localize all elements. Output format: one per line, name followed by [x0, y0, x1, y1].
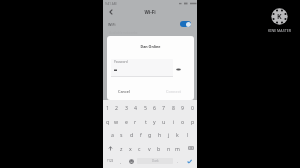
- button[interactable]: 8: [169, 100, 178, 114]
- button[interactable]: Backspace: [186, 141, 195, 155]
- button[interactable]: x: [126, 141, 135, 155]
- button[interactable]: z: [117, 141, 126, 155]
- button[interactable]: 0: [188, 100, 197, 114]
- button[interactable]: Show password: [175, 66, 182, 73]
- staticText: WiFi: [108, 22, 116, 27]
- staticText: z: [120, 145, 123, 152]
- staticText: Dan Online: [107, 44, 194, 49]
- staticText: v: [148, 145, 151, 152]
- staticText: 9: [181, 104, 184, 111]
- staticText: e: [125, 118, 128, 125]
- staticText: a: [111, 131, 114, 138]
- button[interactable]: Shift: [105, 141, 115, 155]
- staticText: Password: [114, 60, 128, 64]
- button[interactable]: 2: [112, 100, 121, 114]
- button[interactable]: j: [164, 127, 173, 141]
- staticText: ?123: [107, 159, 114, 163]
- staticText: w: [114, 118, 119, 125]
- staticText: 4: [134, 104, 137, 111]
- button[interactable]: WiFi: [103, 18, 197, 30]
- staticText: K: [277, 12, 282, 22]
- staticText: u: [162, 118, 166, 125]
- button[interactable]: 3: [122, 100, 131, 114]
- button[interactable]: t: [141, 114, 150, 128]
- button[interactable]: y: [150, 114, 159, 128]
- button[interactable]: l: [183, 127, 192, 141]
- button[interactable]: p: [188, 114, 197, 128]
- staticText: f: [140, 131, 142, 138]
- staticText: l: [187, 131, 189, 138]
- button[interactable]: r: [131, 114, 140, 128]
- button[interactable]: a: [108, 127, 117, 141]
- staticText: 7: [162, 104, 165, 111]
- button[interactable]: n: [164, 141, 173, 155]
- staticText: m: [175, 145, 180, 152]
- staticText: k: [176, 131, 179, 138]
- staticText: Connect: [166, 89, 181, 94]
- button[interactable]: d: [127, 127, 136, 141]
- staticText: 6: [153, 104, 156, 111]
- button[interactable]: Emoji: [127, 154, 136, 168]
- staticText: j: [168, 131, 170, 138]
- staticText: q: [106, 118, 110, 125]
- button[interactable]: e: [122, 114, 131, 128]
- button[interactable]: u: [159, 114, 168, 128]
- button[interactable]: k: [173, 127, 182, 141]
- button[interactable]: Connect: [162, 86, 184, 96]
- button[interactable]: 1: [103, 100, 112, 114]
- staticText: r: [134, 118, 137, 125]
- button[interactable]: 5: [141, 100, 150, 114]
- staticText: s: [120, 131, 123, 138]
- staticText: c: [138, 145, 141, 152]
- staticText: i: [173, 118, 175, 125]
- button[interactable]: [111, 59, 173, 77]
- button[interactable]: 4: [131, 100, 140, 114]
- button[interactable]: f: [136, 127, 145, 141]
- button[interactable]: h: [155, 127, 164, 141]
- button[interactable]: w: [112, 114, 121, 128]
- button[interactable]: Done: [184, 154, 195, 168]
- staticText: Dark: [152, 159, 159, 163]
- staticText: .: [177, 159, 179, 164]
- staticText: t: [145, 118, 147, 125]
- button[interactable]: 6: [150, 100, 159, 114]
- staticText: ,: [120, 159, 122, 164]
- button[interactable]: o: [178, 114, 187, 128]
- button[interactable]: Back: [106, 7, 116, 17]
- button[interactable]: ,: [117, 154, 125, 168]
- staticText: d: [130, 131, 134, 138]
- staticText: b: [157, 145, 161, 152]
- button[interactable]: b: [154, 141, 163, 155]
- staticText: 5: [144, 104, 147, 111]
- staticText: 9:41 AM: [105, 2, 117, 6]
- button[interactable]: q: [103, 114, 112, 128]
- staticText: 8: [172, 104, 175, 111]
- staticText: g: [148, 131, 152, 138]
- button[interactable]: 9: [178, 100, 187, 114]
- button[interactable]: g: [145, 127, 154, 141]
- staticText: y: [153, 118, 156, 125]
- button[interactable]: i: [169, 114, 178, 128]
- button[interactable]: m: [173, 141, 182, 155]
- staticText: n: [167, 145, 171, 152]
- button[interactable]: Cancel: [115, 86, 134, 96]
- staticText: p: [191, 118, 195, 125]
- staticText: Cancel: [118, 89, 131, 94]
- staticText: 1: [106, 104, 109, 111]
- staticText: Wi-Fi: [103, 9, 197, 15]
- staticText: x: [129, 145, 132, 152]
- button[interactable]: v: [145, 141, 154, 155]
- staticText: h: [158, 131, 162, 138]
- button[interactable]: 7: [159, 100, 168, 114]
- staticText: 2: [115, 104, 118, 111]
- button[interactable]: c: [135, 141, 144, 155]
- staticText: 3: [125, 104, 128, 111]
- staticText: KINE MASTER: [268, 28, 291, 33]
- button[interactable]: ?123: [104, 154, 117, 168]
- button[interactable]: Space: [137, 158, 173, 164]
- button[interactable]: s: [117, 127, 126, 141]
- staticText: 0: [191, 104, 194, 111]
- staticText: o: [181, 118, 185, 125]
